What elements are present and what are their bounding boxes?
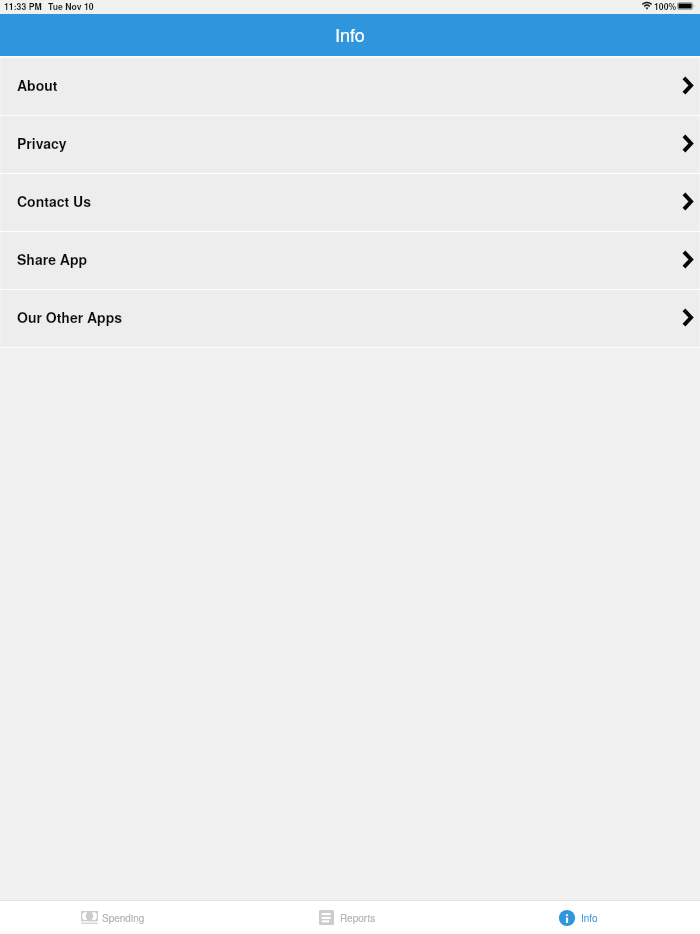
- other: Open: [682, 308, 693, 327]
- button[interactable]: Contact Us: [1, 174, 699, 231]
- staticText: Our Other Apps: [17, 307, 123, 327]
- button[interactable]: Reports: [234, 901, 467, 934]
- button[interactable]: Our Other Apps: [1, 290, 699, 347]
- button[interactable]: Info: [467, 901, 700, 934]
- staticText: Contact Us: [17, 191, 91, 211]
- staticText: Tue Nov 10: [48, 0, 94, 12]
- staticText: About: [17, 75, 58, 95]
- button[interactable]: Spending: [0, 901, 234, 934]
- button[interactable]: Privacy: [1, 116, 699, 173]
- staticText: Info: [335, 21, 365, 47]
- staticText: Share App: [17, 249, 88, 269]
- staticText: Info: [581, 911, 598, 925]
- other: Open: [682, 76, 693, 95]
- staticText: 11:33 PM: [4, 0, 42, 12]
- staticText: Spending: [102, 911, 145, 925]
- other: Open: [682, 134, 693, 153]
- button[interactable]: Share App: [1, 232, 699, 289]
- button[interactable]: About: [1, 58, 699, 115]
- other: Open: [682, 250, 693, 269]
- staticText: Reports: [340, 911, 376, 925]
- staticText: 100%: [654, 0, 677, 12]
- staticText: Privacy: [17, 133, 67, 153]
- other: Open: [682, 192, 693, 211]
